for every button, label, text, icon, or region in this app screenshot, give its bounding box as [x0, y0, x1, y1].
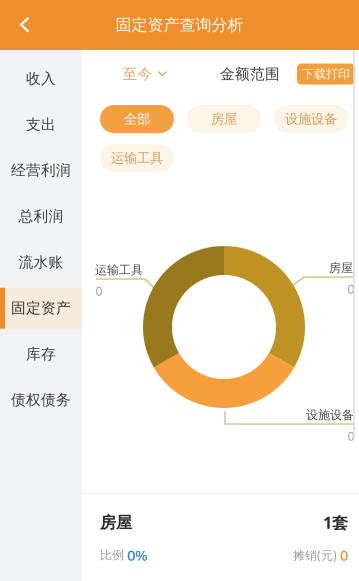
- button[interactable]: 至今: [114, 59, 176, 89]
- staticText: 设施设备: [285, 111, 337, 127]
- staticText: 固定资产查询分析: [115, 15, 243, 35]
- staticText: 流水账: [18, 253, 63, 271]
- staticText: 0: [347, 281, 354, 297]
- staticText: 摊销(元): [293, 547, 337, 563]
- staticText: 总利润: [18, 207, 63, 225]
- button[interactable]: 总利润: [0, 193, 82, 239]
- staticText: 1套: [323, 512, 348, 533]
- staticText: 固定资产: [11, 299, 71, 317]
- staticText: 比例: [100, 548, 124, 562]
- button[interactable]: 房屋: [187, 105, 261, 133]
- staticText: 房屋: [211, 111, 237, 127]
- staticText: 金额范围: [220, 65, 280, 83]
- button[interactable]: 金额范围: [220, 59, 280, 89]
- button[interactable]: 经营利润: [0, 147, 82, 193]
- staticText: 设施设备: [306, 408, 354, 422]
- staticText: 库存: [26, 345, 56, 363]
- button[interactable]: 债权债务: [0, 377, 82, 423]
- button[interactable]: 固定资产: [0, 285, 82, 331]
- staticText: 全部: [124, 111, 150, 127]
- button[interactable]: 全部: [100, 105, 174, 133]
- button[interactable]: 设施设备: [274, 105, 348, 133]
- staticText: 运输工具: [95, 263, 143, 277]
- button[interactable]: 支出: [0, 102, 82, 147]
- staticText: 0: [340, 545, 348, 565]
- staticText: 下载打印: [302, 67, 350, 81]
- button[interactable]: 流水账: [0, 239, 82, 285]
- staticText: 经营利润: [11, 161, 71, 179]
- button[interactable]: 收入: [0, 56, 82, 102]
- staticText: 房屋: [329, 261, 353, 275]
- staticText: 房屋: [100, 513, 132, 532]
- staticText: 支出: [26, 115, 56, 133]
- staticText: 债权债务: [11, 391, 71, 409]
- button[interactable]: 库存: [0, 331, 82, 377]
- staticText: 至今: [122, 65, 152, 83]
- staticText: 0: [95, 283, 102, 299]
- button[interactable]: 运输工具: [100, 144, 174, 172]
- button[interactable]: Back: [0, 0, 50, 50]
- staticText: 运输工具: [111, 150, 163, 166]
- staticText: 收入: [26, 70, 56, 88]
- staticText: 0%: [127, 545, 147, 565]
- button[interactable]: 下载打印: [297, 63, 355, 84]
- staticText: 0: [347, 428, 354, 444]
